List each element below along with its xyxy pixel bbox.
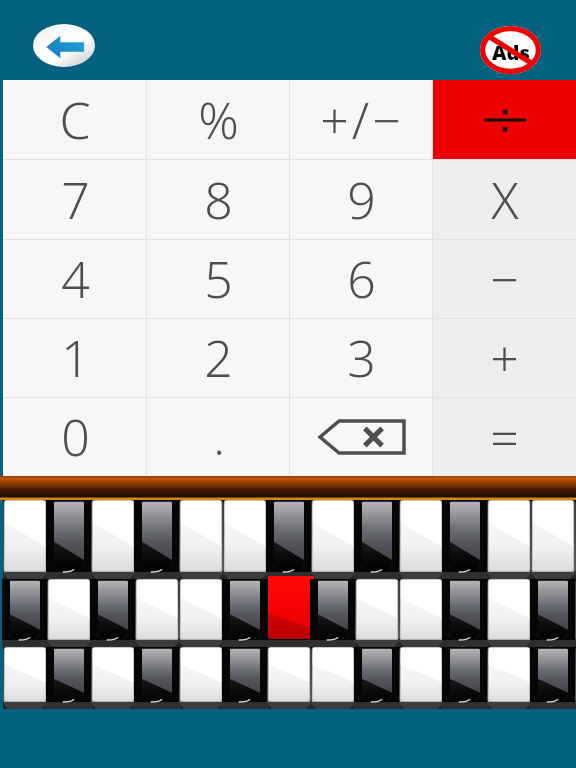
button[interactable]: Piano keys bbox=[0, 500, 576, 579]
button[interactable]: 1 bbox=[3, 319, 147, 397]
button[interactable]: Remove Ads bbox=[480, 26, 541, 74]
button[interactable]: +/− bbox=[290, 80, 433, 159]
button[interactable]: Back bbox=[33, 24, 95, 67]
staticText: 2 bbox=[204, 324, 233, 392]
staticText: − bbox=[490, 245, 519, 313]
staticText: 3 bbox=[347, 324, 376, 392]
staticText: 5 bbox=[204, 245, 233, 313]
button[interactable]: − bbox=[433, 240, 576, 318]
staticText: 4 bbox=[61, 245, 90, 313]
staticText: 6 bbox=[347, 245, 376, 313]
button[interactable]: X bbox=[433, 160, 576, 239]
staticText: 0 bbox=[61, 403, 90, 471]
button[interactable]: C bbox=[3, 80, 147, 159]
staticText: = bbox=[490, 403, 519, 471]
button[interactable]: 8 bbox=[147, 160, 290, 239]
staticText: C bbox=[59, 86, 91, 154]
staticText: 7 bbox=[61, 166, 90, 234]
button[interactable]: 2 bbox=[147, 319, 290, 397]
staticText: 1 bbox=[61, 324, 90, 392]
button[interactable]: 6 bbox=[290, 240, 433, 318]
button[interactable]: % bbox=[147, 80, 290, 159]
staticText: 9 bbox=[347, 166, 376, 234]
button[interactable]: = bbox=[433, 398, 576, 476]
button[interactable] bbox=[433, 80, 576, 159]
staticText: % bbox=[198, 86, 239, 154]
button[interactable]: Piano keys bbox=[0, 647, 576, 709]
staticText: X bbox=[491, 166, 519, 234]
button[interactable]: 9 bbox=[290, 160, 433, 239]
staticText: +/− bbox=[320, 86, 404, 154]
button[interactable]: 7 bbox=[3, 160, 147, 239]
staticText: . bbox=[213, 406, 225, 469]
button[interactable] bbox=[290, 398, 433, 476]
staticText: Ads bbox=[492, 39, 530, 66]
button[interactable]: . bbox=[147, 398, 290, 476]
button[interactable]: 5 bbox=[147, 240, 290, 318]
button[interactable]: + bbox=[433, 319, 576, 397]
staticText: 8 bbox=[204, 166, 233, 234]
button[interactable]: 3 bbox=[290, 319, 433, 397]
staticText: + bbox=[490, 324, 519, 392]
button[interactable]: 0 bbox=[3, 398, 147, 476]
button[interactable]: Piano keys bbox=[0, 579, 576, 647]
button[interactable]: 4 bbox=[3, 240, 147, 318]
